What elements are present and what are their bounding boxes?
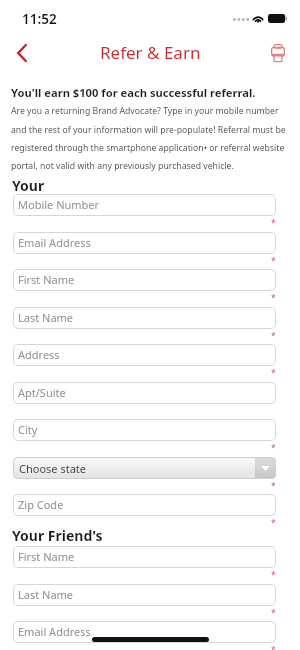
staticText: City	[18, 422, 38, 437]
staticText: *	[271, 607, 276, 619]
staticText: Your	[12, 176, 45, 195]
staticText: Address	[18, 347, 60, 362]
button[interactable]: Email Address	[13, 621, 276, 643]
button[interactable]: Choose state	[13, 457, 276, 479]
staticText: *	[271, 217, 276, 229]
staticText: 11:52	[22, 10, 57, 28]
button[interactable]: Email Address	[13, 232, 276, 254]
staticText: Email Address	[18, 235, 91, 250]
button[interactable]: Print	[262, 37, 293, 68]
staticText: *	[271, 442, 276, 454]
staticText: *	[271, 292, 276, 304]
staticText: Are you a returning Brand Advocate? Type…	[11, 105, 288, 171]
button[interactable]: Last Name	[13, 584, 276, 606]
staticText: Apt/Suite	[18, 385, 66, 400]
staticText: First Name	[18, 549, 75, 564]
button[interactable]: Back	[5, 36, 39, 70]
button[interactable]: First Name	[13, 269, 276, 291]
staticText: Zip Code	[18, 497, 64, 512]
button[interactable]: Address	[13, 344, 276, 366]
button[interactable]: Apt/Suite	[13, 382, 276, 404]
staticText: Email Address	[18, 624, 91, 639]
button[interactable]: Zip Code	[13, 494, 276, 516]
staticText: You'll earn $100 for each successful ref…	[11, 85, 256, 100]
staticText: *	[271, 255, 276, 267]
staticText: Last Name	[18, 310, 74, 325]
staticText: Your Friend's	[12, 526, 103, 545]
button[interactable]: Mobile Number	[13, 194, 276, 216]
button[interactable]: Last Name	[13, 307, 276, 329]
staticText: *	[271, 569, 276, 581]
staticText: *	[271, 330, 276, 342]
staticText: Refer & Earn	[100, 41, 201, 64]
button[interactable]: City	[13, 419, 276, 441]
staticText: *	[271, 480, 276, 492]
staticText: Choose state	[19, 461, 86, 476]
staticText: *	[271, 517, 276, 529]
staticText: *	[271, 367, 276, 379]
staticText: *	[271, 644, 276, 650]
button[interactable]: First Name	[13, 546, 276, 568]
staticText: First Name	[18, 272, 75, 287]
staticText: Mobile Number	[18, 197, 100, 212]
staticText: Last Name	[18, 587, 74, 602]
